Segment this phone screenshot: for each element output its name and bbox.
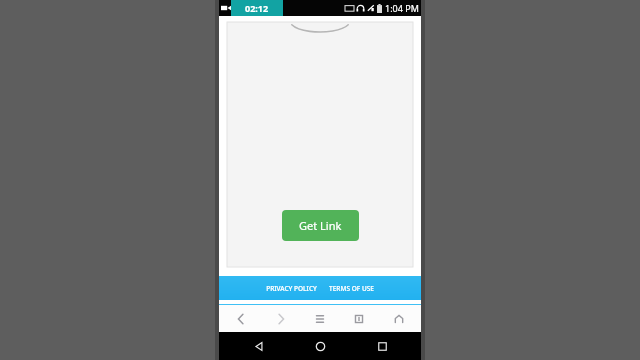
button[interactable]: PRIVACY POLICY — [263, 280, 320, 297]
button[interactable]: Get Link — [282, 210, 359, 241]
button[interactable]: Recent apps — [360, 332, 404, 360]
button[interactable]: Home — [382, 305, 416, 332]
button[interactable]: Forward — [264, 305, 298, 332]
button[interactable]: Back — [224, 305, 258, 332]
staticText: TERMS OF USE — [329, 284, 374, 293]
staticText: PRIVACY POLICY — [266, 284, 317, 293]
button[interactable]: Back — [237, 332, 281, 360]
button[interactable]: Tabs — [342, 305, 376, 332]
button[interactable]: TERMS OF USE — [326, 280, 377, 297]
button[interactable]: Menu — [303, 305, 337, 332]
button[interactable]: Home — [298, 332, 342, 360]
staticText: 02:12 — [245, 2, 269, 14]
staticText: 1:04 PM — [385, 2, 419, 14]
staticText: Get Link — [299, 218, 342, 233]
